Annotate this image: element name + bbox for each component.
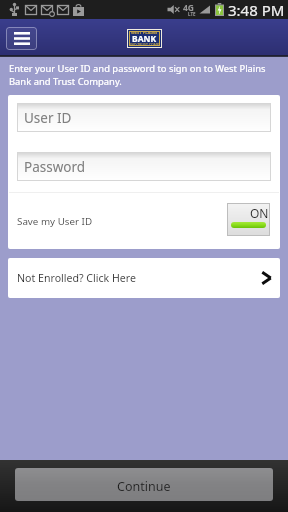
staticText: WEST PLAINS	[131, 30, 158, 35]
staticText: Continue	[117, 478, 171, 495]
button[interactable]: Save my User ID toggle, on	[227, 203, 270, 236]
button[interactable]: Password	[17, 152, 271, 181]
staticText: User ID	[24, 109, 72, 127]
button[interactable]: User ID	[17, 103, 271, 132]
staticText: Bank and Trust Company.	[9, 75, 122, 88]
staticText: ON	[250, 205, 269, 221]
staticText: LTE	[188, 11, 196, 17]
staticText: Not Enrolled? Click Here	[17, 271, 136, 285]
staticText: 3:48 PM	[228, 0, 285, 19]
staticText: Save my User ID	[17, 215, 93, 228]
button[interactable]: Continue	[15, 468, 273, 501]
button[interactable]: Not Enrolled? Click Here	[8, 258, 280, 298]
staticText: Password	[24, 158, 86, 176]
staticText: 4G	[183, 2, 195, 14]
staticText: BANK	[132, 33, 157, 45]
button[interactable]: Open navigation menu	[6, 27, 37, 50]
button[interactable]: Save my User ID	[8, 193, 280, 249]
staticText: AND TRUST COMPANY	[129, 42, 160, 47]
staticText: Enter your User ID and password to sign …	[9, 62, 285, 75]
